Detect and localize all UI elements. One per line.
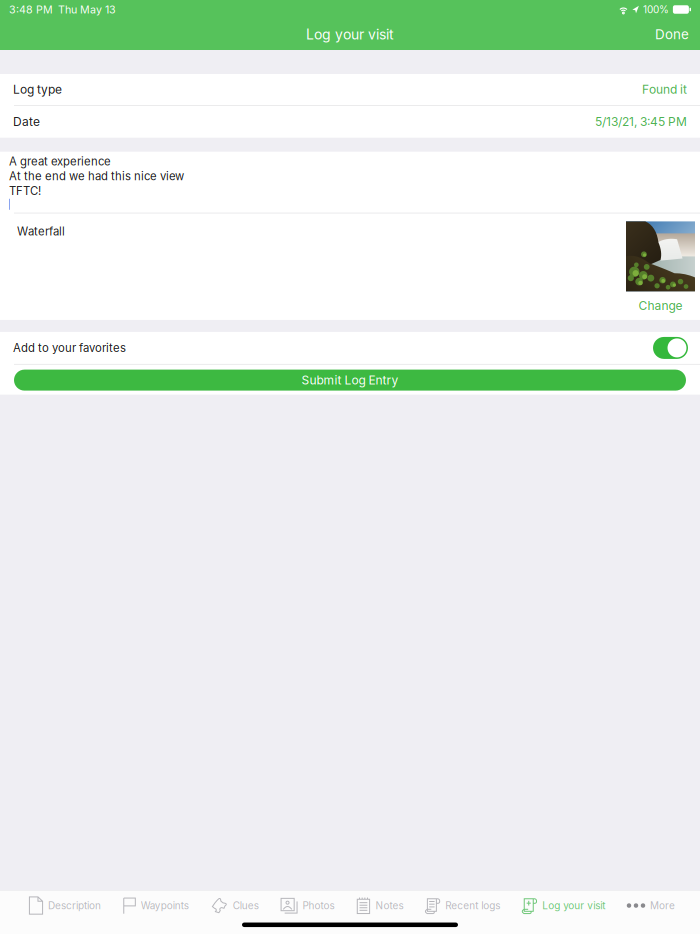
staticText: Submit Log Entry	[301, 373, 398, 387]
button[interactable]: Log your visit	[519, 890, 608, 922]
button[interactable]: Waypoints	[120, 890, 192, 922]
staticText: Recent logs	[445, 899, 500, 912]
staticText: 100%	[643, 3, 669, 16]
staticText: Waterfall	[17, 224, 65, 238]
button[interactable]: Add to your favorites	[653, 337, 688, 359]
staticText: Thu May 13	[58, 3, 116, 16]
staticText: More	[650, 899, 675, 912]
button[interactable]: Submit Log Entry	[0, 365, 700, 395]
button[interactable]: Change	[626, 298, 695, 313]
staticText: A great experience	[9, 155, 111, 168]
staticText: Found it	[642, 82, 687, 97]
staticText: Notes	[375, 899, 403, 912]
staticText: Log type	[13, 82, 62, 97]
staticText: Change	[638, 298, 682, 313]
staticText: TFTC!	[9, 184, 41, 198]
staticText: 5/13/21, 3:45 PM	[595, 114, 687, 129]
button[interactable]: Recent logs	[422, 890, 503, 922]
staticText: Log your visit	[306, 26, 394, 43]
staticText: Waypoints	[141, 899, 189, 912]
staticText: Add to your favorites	[13, 341, 126, 355]
staticText: Done	[655, 26, 689, 42]
button[interactable]: More	[624, 890, 678, 922]
staticText: 3:48 PM	[9, 3, 53, 16]
button[interactable]: Date	[0, 106, 700, 138]
staticText: Log your visit	[542, 899, 605, 912]
button[interactable]: Description	[26, 890, 104, 922]
staticText: Description	[48, 899, 101, 912]
button[interactable]: Photos	[278, 890, 338, 922]
button[interactable]: Clues	[208, 890, 262, 922]
button[interactable]: Done	[649, 22, 695, 46]
staticText: Photos	[303, 899, 335, 912]
staticText: At the end we had this nice view	[9, 169, 184, 183]
staticText: Date	[13, 114, 40, 129]
button[interactable]: Notes	[353, 890, 406, 922]
staticText: Clues	[233, 899, 259, 912]
button[interactable]: Log type	[0, 74, 700, 105]
